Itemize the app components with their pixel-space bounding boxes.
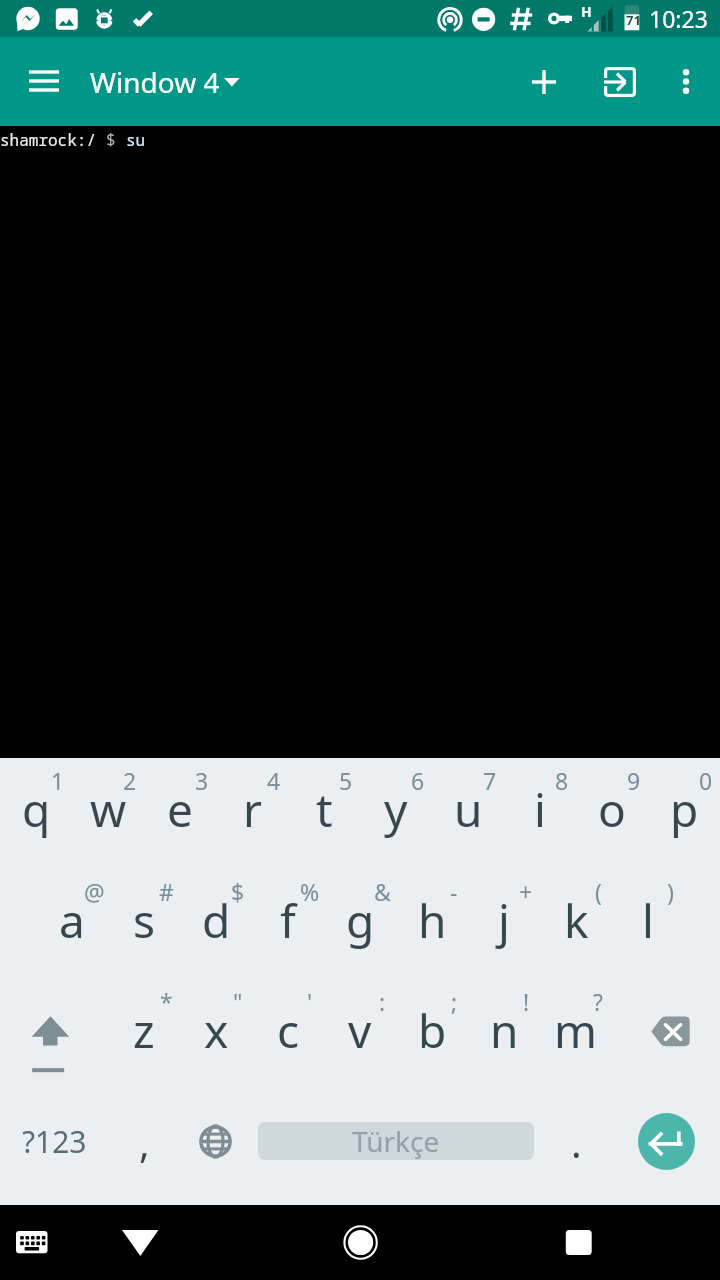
staticText: x [204, 999, 229, 1062]
staticText: h [418, 889, 447, 952]
button[interactable]: i [504, 759, 576, 869]
staticText: t [316, 778, 333, 841]
staticText: 2 [123, 765, 137, 795]
button[interactable]: d [180, 870, 252, 980]
button[interactable]: n [468, 980, 540, 1090]
button[interactable]: Recent apps [540, 1205, 620, 1280]
staticText: 5 [339, 765, 353, 795]
staticText: b [418, 999, 447, 1062]
button[interactable]: e [144, 759, 216, 869]
staticText: i [534, 778, 546, 841]
button[interactable]: z [108, 980, 180, 1090]
staticText: Türkçe [352, 1122, 440, 1160]
staticText: k [564, 889, 589, 952]
staticText: a [59, 889, 85, 952]
button[interactable]: f [252, 870, 324, 980]
button[interactable]: Home [320, 1205, 402, 1280]
button[interactable]: q [0, 759, 72, 869]
staticText: j [498, 889, 510, 952]
button[interactable]: . [540, 1083, 612, 1200]
button[interactable]: Enter [638, 1113, 695, 1170]
staticText: # [159, 876, 174, 906]
staticText: 9 [627, 765, 641, 795]
button[interactable]: Backspace [630, 980, 720, 1090]
staticText: w [90, 778, 127, 841]
button[interactable]: b [396, 980, 468, 1090]
button[interactable]: u [432, 759, 504, 869]
button[interactable]: o [576, 759, 648, 869]
staticText: ) [667, 876, 674, 906]
staticText: z [133, 999, 155, 1062]
button[interactable]: s [108, 870, 180, 980]
button[interactable]: a [36, 870, 108, 980]
button[interactable]: , [108, 1083, 180, 1200]
button[interactable]: Türkçe [258, 1122, 534, 1160]
button[interactable]: j [468, 870, 540, 980]
staticText: % [300, 876, 320, 906]
button[interactable]: Change keyboard language [180, 1083, 252, 1200]
staticText: + [519, 876, 533, 906]
staticText: 3 [195, 765, 209, 795]
staticText: $ [106, 129, 126, 151]
button[interactable]: More options [655, 37, 717, 126]
button[interactable]: r [216, 759, 288, 869]
staticText: ' [307, 986, 313, 1016]
staticText: m [554, 999, 598, 1062]
button[interactable]: c [252, 980, 324, 1090]
staticText: 8 [555, 765, 569, 795]
button[interactable]: ?123 [0, 1083, 108, 1200]
button[interactable]: v [324, 980, 396, 1090]
staticText: Window 4 [90, 63, 220, 101]
staticText: ? [593, 986, 603, 1016]
button[interactable]: y [360, 759, 432, 869]
staticText: o [598, 778, 626, 841]
staticText: su [126, 129, 146, 151]
staticText: p [670, 778, 699, 841]
staticText: ?123 [22, 1121, 87, 1162]
staticText: shamrock:/ [0, 129, 106, 151]
staticText: y [384, 778, 408, 841]
staticText: l [642, 889, 654, 952]
staticText: @ [84, 876, 105, 906]
button[interactable]: Switch keyboard [0, 1205, 64, 1280]
button[interactable]: p [648, 759, 720, 869]
button[interactable]: Open navigation drawer [0, 37, 88, 126]
staticText: " [233, 986, 243, 1016]
button[interactable]: Window 4 session [88, 37, 248, 126]
button[interactable]: Hide keyboard [105, 1205, 177, 1280]
button[interactable]: g [324, 870, 396, 980]
button[interactable]: x [180, 980, 252, 1090]
staticText: H [581, 2, 592, 21]
staticText: q [22, 778, 51, 841]
button[interactable]: Toggle soft keyboard [586, 37, 654, 126]
button[interactable]: m [540, 980, 612, 1090]
staticText: u [454, 778, 483, 841]
staticText: . [571, 1115, 582, 1169]
staticText: 71 [626, 11, 641, 29]
button[interactable]: w [72, 759, 144, 869]
button[interactable]: k [540, 870, 612, 980]
staticText: g [346, 889, 375, 952]
staticText: s [133, 889, 156, 952]
staticText: ( [595, 876, 602, 906]
staticText: n [490, 999, 519, 1062]
staticText: r [243, 778, 262, 841]
staticText: ! [523, 986, 530, 1016]
button[interactable]: l [612, 870, 684, 980]
staticText: 10:23 [649, 3, 708, 34]
staticText: 0 [699, 765, 713, 795]
staticText: c [277, 999, 300, 1062]
staticText: e [167, 778, 193, 841]
staticText: : [379, 986, 386, 1016]
staticText: $ [231, 876, 245, 906]
button[interactable]: Shift [0, 980, 108, 1090]
staticText: f [280, 889, 296, 952]
staticText: d [202, 889, 231, 952]
staticText: 7 [483, 765, 497, 795]
button[interactable]: New session [510, 37, 578, 126]
button[interactable]: t [288, 759, 360, 869]
staticText: & [374, 876, 391, 906]
staticText: * [160, 986, 173, 1016]
staticText: 6 [411, 765, 425, 795]
button[interactable]: h [396, 870, 468, 980]
